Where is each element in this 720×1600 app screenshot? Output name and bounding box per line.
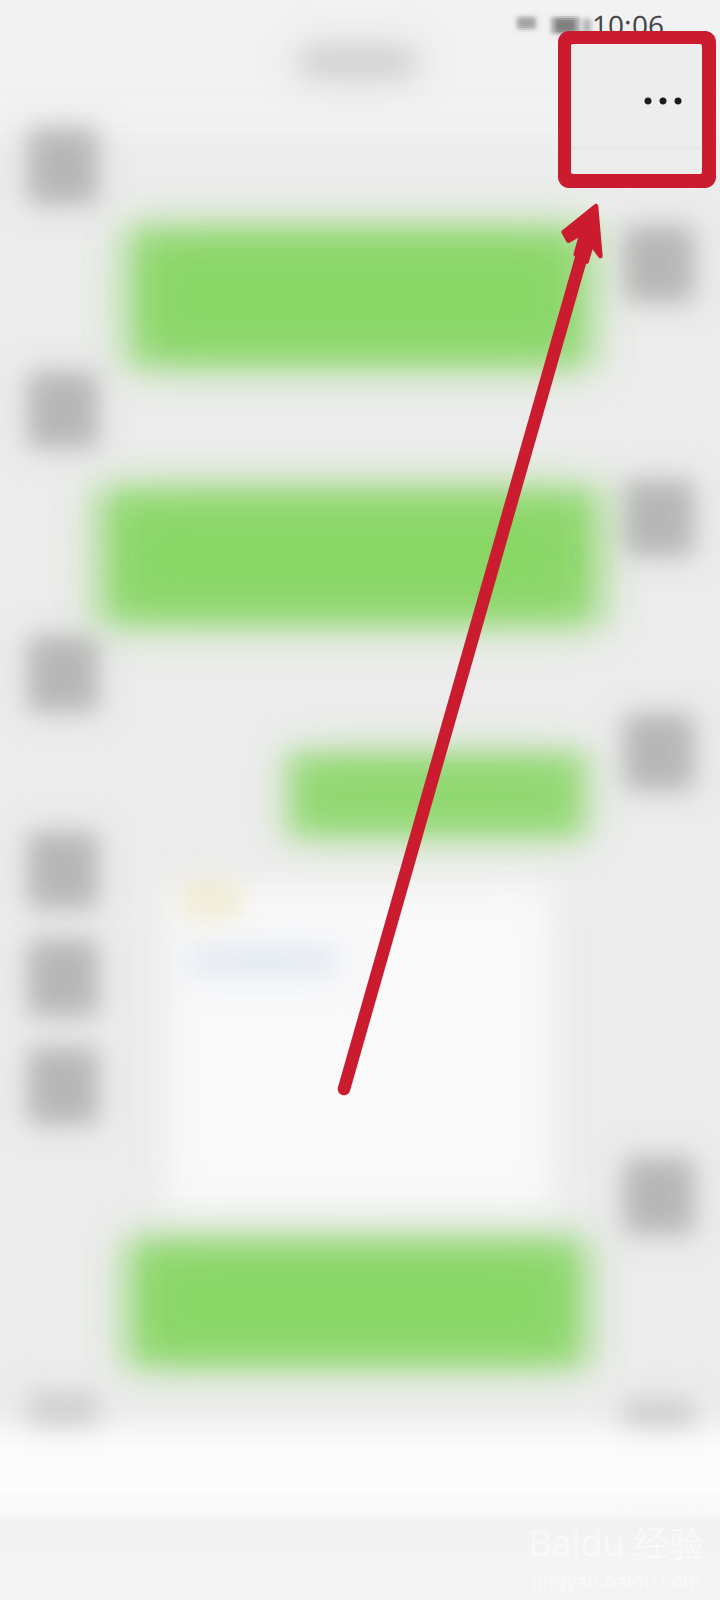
staticText: 10:06	[592, 6, 664, 44]
button[interactable]: More	[0, 0, 720, 1600]
